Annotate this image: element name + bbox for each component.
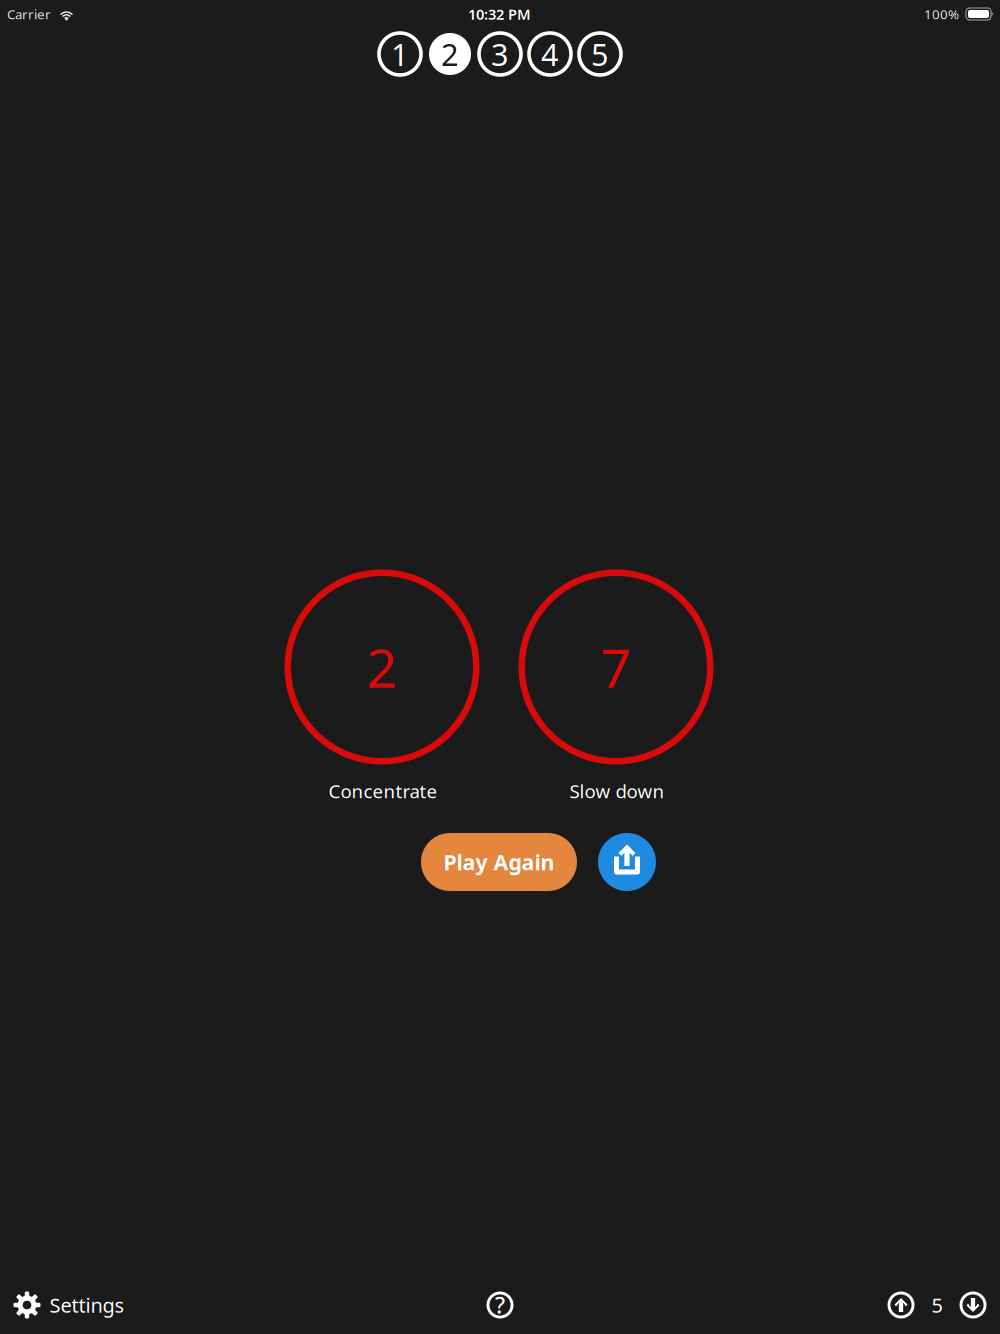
button[interactable]: Play Again <box>421 833 577 891</box>
staticText: 2 <box>366 632 397 702</box>
staticText: 3 <box>491 34 509 74</box>
staticText: 2 <box>441 34 459 74</box>
button[interactable]: 2 <box>429 33 471 75</box>
staticText: Slow down <box>569 779 664 803</box>
button[interactable]: 5 <box>579 33 621 75</box>
button[interactable]: Settings <box>0 1277 138 1333</box>
staticText: Settings <box>49 1292 124 1318</box>
button[interactable]: Share <box>598 833 656 891</box>
staticText: 4 <box>541 34 559 74</box>
staticText: 100% <box>924 5 959 23</box>
staticText: 7 <box>600 632 631 702</box>
button[interactable]: Decrease <box>942 1277 1000 1333</box>
staticText: Play Again <box>443 848 554 876</box>
button[interactable]: 1 <box>379 33 421 75</box>
button[interactable]: Help <box>472 1277 527 1332</box>
button[interactable]: 3 <box>479 33 521 75</box>
staticText: 1 <box>391 34 409 74</box>
button[interactable]: 4 <box>529 33 571 75</box>
staticText: 5 <box>591 34 609 74</box>
staticText: Carrier <box>7 5 51 23</box>
staticText: Concentrate <box>328 779 437 803</box>
staticText: ? <box>495 1290 505 1320</box>
staticText: 10:32 PM <box>468 4 531 24</box>
button[interactable]: Increase <box>873 1277 931 1333</box>
staticText: 5 <box>931 1292 942 1318</box>
